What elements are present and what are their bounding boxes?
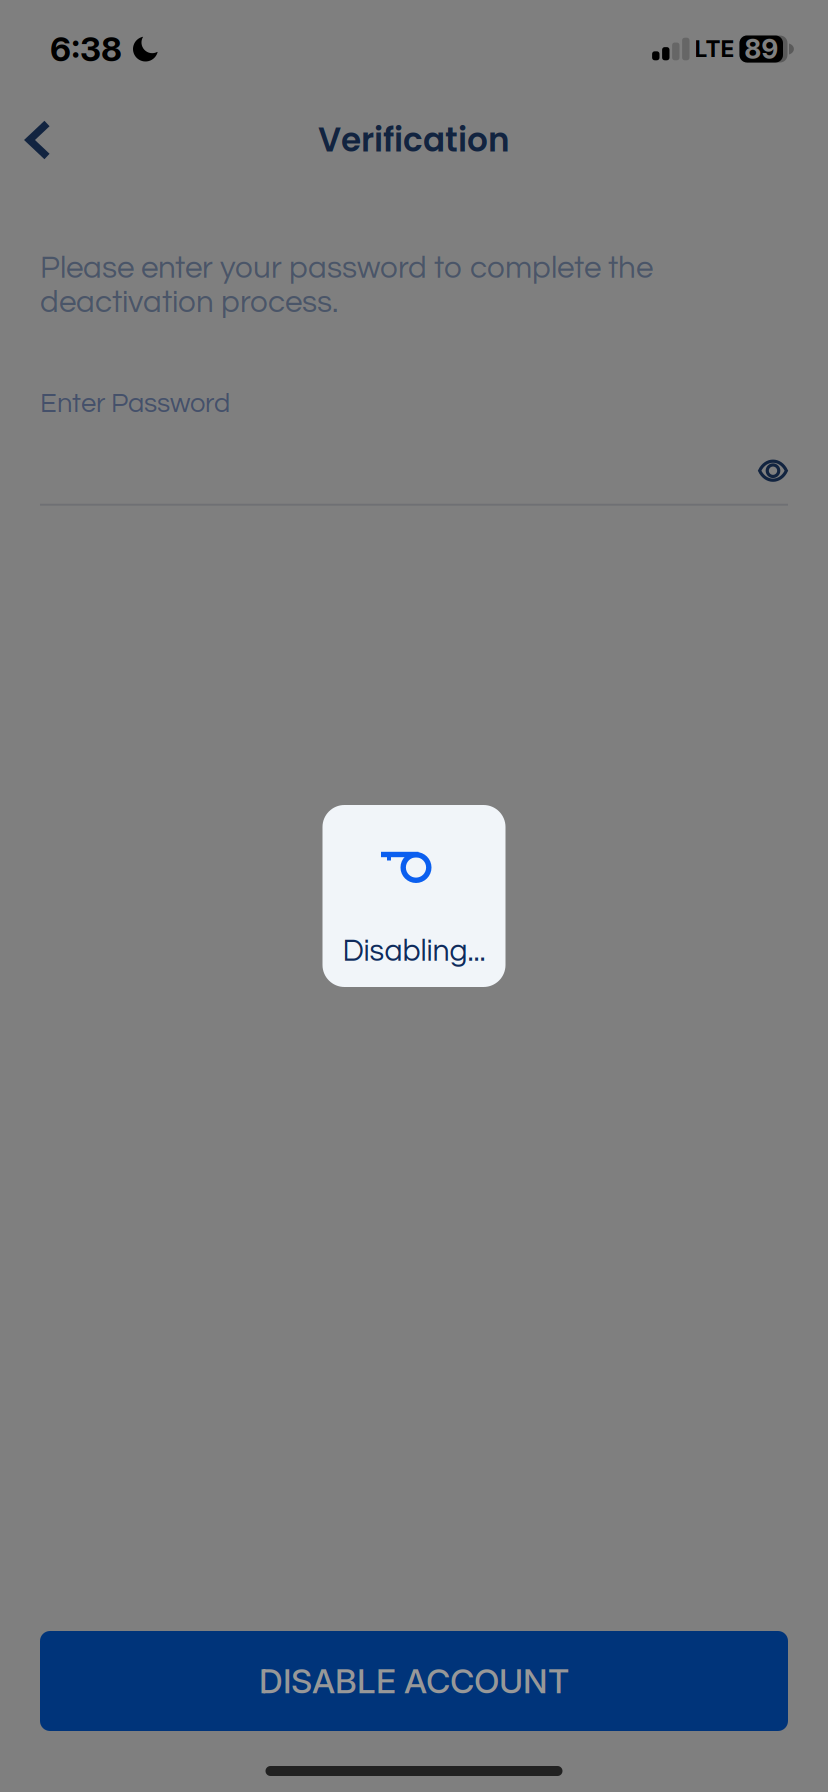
staticText: 6:38 <box>50 29 122 69</box>
staticText: Verification <box>318 117 510 163</box>
staticText: DISABLE ACCOUNT <box>259 1661 569 1701</box>
staticText: 89 <box>744 33 778 65</box>
button[interactable]: Back <box>1 103 75 177</box>
staticText: Disabling... <box>342 936 485 967</box>
staticText: deactivation process. <box>40 286 338 319</box>
staticText: LTE <box>694 35 734 63</box>
staticText: Please enter your password to complete t… <box>40 252 653 284</box>
button[interactable]: DISABLE ACCOUNT <box>40 1631 788 1731</box>
button[interactable]: Show password <box>758 444 788 498</box>
staticText: Enter Password <box>40 389 230 418</box>
